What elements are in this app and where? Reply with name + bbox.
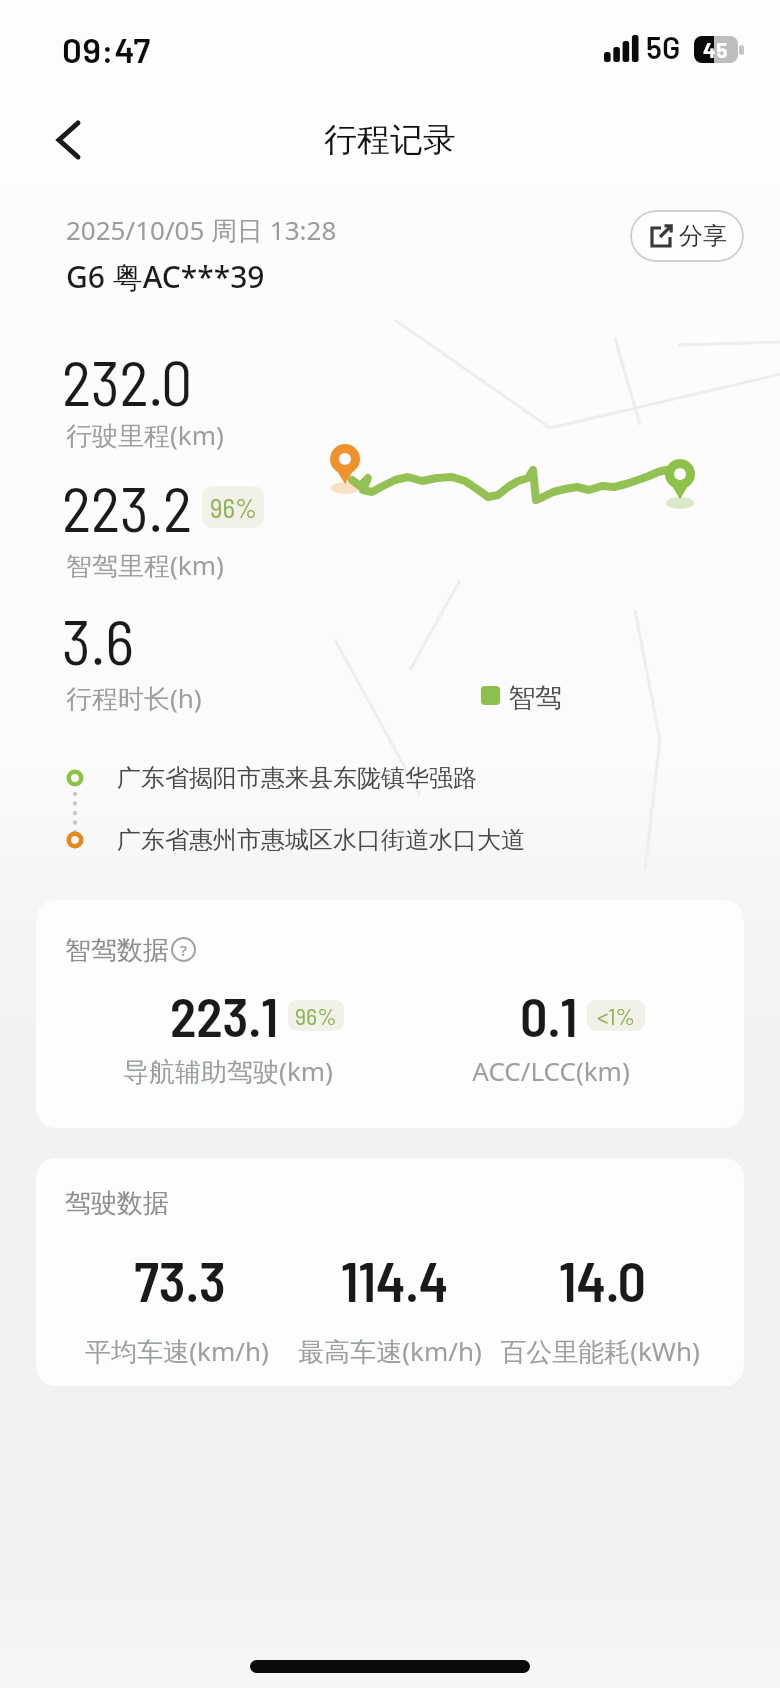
staticText: 驾驶数据 — [65, 1187, 169, 1220]
staticText: 百公里能耗(kWh) — [500, 1333, 700, 1369]
staticText: 智驾数据 — [65, 934, 169, 967]
staticText: G6 粤AC***39 — [66, 256, 265, 297]
staticText: 行程记录 — [324, 119, 456, 161]
staticText: 2025/10/05 周日 13:28 — [66, 212, 337, 248]
staticText: 45 — [703, 37, 729, 62]
staticText: 09:47 — [62, 28, 151, 70]
staticText: 73.3 — [134, 1246, 226, 1313]
staticText: 96% — [210, 491, 257, 523]
staticText: 3.6 — [62, 603, 134, 677]
staticText: 14.0 — [559, 1246, 646, 1313]
staticText: 行驶里程(km) — [66, 417, 224, 453]
staticText: 广东省揭阳市惠来县东陇镇华强路 — [117, 763, 477, 793]
staticText: ? — [180, 940, 187, 960]
staticText: 分享 — [679, 221, 727, 251]
staticText: 0.1 — [520, 983, 578, 1048]
staticText: 广东省惠州市惠城区水口街道水口大道 — [117, 825, 525, 855]
staticText: ACC/LCC(km) — [472, 1053, 630, 1088]
staticText: 223.1 — [170, 983, 279, 1048]
staticText: 平均车速(km/h) — [85, 1333, 269, 1369]
button[interactable]: ? — [171, 937, 196, 962]
staticText: 114.4 — [341, 1246, 448, 1313]
staticText: 导航辅助驾驶(km) — [123, 1053, 333, 1089]
button[interactable] — [48, 116, 88, 164]
button[interactable]: 分享 — [630, 210, 744, 262]
staticText: 96% — [295, 1001, 337, 1030]
staticText: 232.0 — [62, 344, 193, 418]
staticText: 223.2 — [62, 470, 193, 544]
staticText: <1% — [597, 1001, 636, 1030]
staticText: 最高车速(km/h) — [298, 1333, 482, 1369]
staticText: 智驾里程(km) — [66, 547, 224, 583]
staticText: 行程时长(h) — [66, 680, 202, 716]
staticText: 5G — [646, 29, 681, 65]
staticText: 智驾 — [508, 681, 562, 715]
